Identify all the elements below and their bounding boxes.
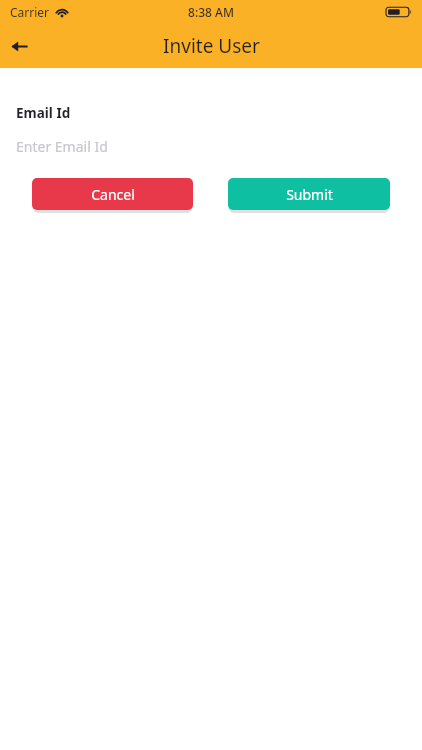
button[interactable]: Submit [228,178,390,210]
staticText: Invite User [163,33,260,59]
button[interactable]: Cancel [32,178,193,210]
staticText: Carrier [10,4,50,20]
staticText: Email Id [16,104,71,122]
staticText: Cancel [91,185,135,204]
staticText: Enter Email Id [16,137,108,156]
staticText: Submit [286,185,333,204]
button[interactable]: Back [0,26,40,66]
staticText: 8:38 AM [188,4,234,20]
button[interactable]: Enter Email Id [16,136,406,156]
